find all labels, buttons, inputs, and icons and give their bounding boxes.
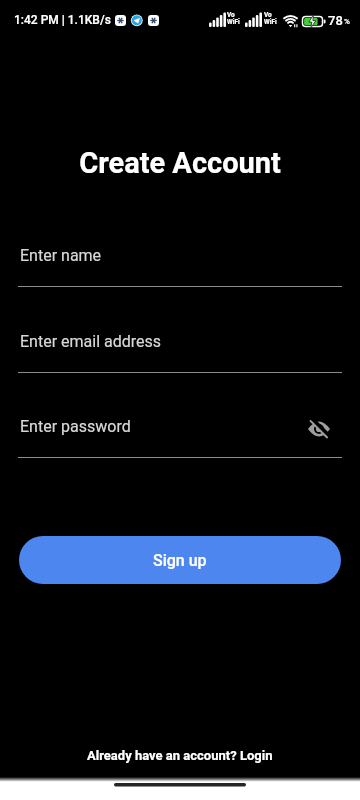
staticText: Already have an account? Login [87,748,273,763]
staticText: Enter email address [20,332,162,351]
staticText: Sign up [153,551,207,570]
staticText: 78 [328,13,343,28]
button[interactable]: Enter name [18,238,342,287]
staticText: Enter name [20,246,102,265]
button[interactable]: Already have an account? Login [0,743,360,768]
button[interactable]: Enter email address [18,324,342,373]
staticText: 1:42 PM | 1.1KB/s [14,13,111,27]
button[interactable]: Enter password [18,409,342,458]
staticText: % [344,17,350,26]
staticText: Vo WiFi [227,11,240,25]
staticText: Create Account [0,146,360,180]
staticText: Vo WiFi [264,11,277,25]
button[interactable]: Sign up [19,536,341,584]
staticText: Enter password [20,417,131,436]
